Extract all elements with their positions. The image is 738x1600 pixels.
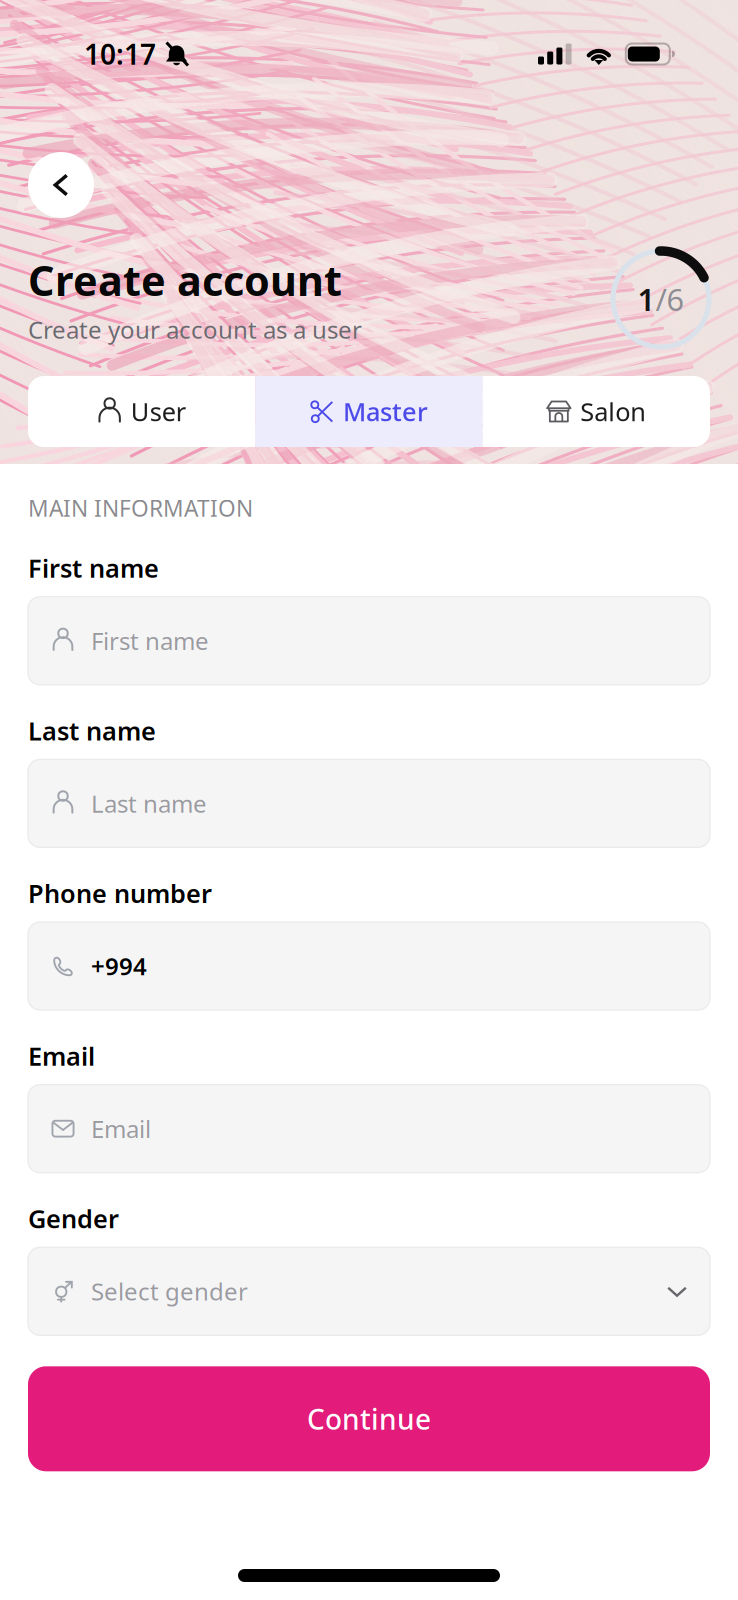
staticText: User	[131, 395, 186, 428]
staticText: Master	[343, 395, 428, 428]
staticText: MAIN INFORMATION	[28, 493, 253, 523]
staticText: First name	[91, 625, 209, 657]
staticText: Gender	[28, 1202, 119, 1235]
staticText: /6	[655, 279, 684, 319]
button[interactable]: Back	[28, 152, 94, 218]
staticText: Email	[28, 1039, 95, 1073]
staticText: +994	[91, 950, 147, 982]
button[interactable]: +994	[28, 922, 710, 1010]
staticText: Phone number	[28, 876, 212, 910]
staticText: Continue	[307, 1400, 431, 1437]
button[interactable]: First name	[28, 597, 710, 685]
staticText: 1	[637, 279, 655, 319]
button[interactable]: Salon	[483, 376, 710, 447]
button[interactable]: Email	[28, 1085, 710, 1173]
staticText: Create your account as a user	[28, 313, 362, 345]
staticText: Create account	[28, 253, 342, 307]
staticText: Last name	[28, 714, 156, 747]
button[interactable]: User	[28, 376, 255, 447]
staticText: Email	[91, 1113, 151, 1145]
staticText: Salon	[580, 395, 646, 428]
button[interactable]: Master	[255, 376, 483, 447]
staticText: Select gender	[91, 1275, 248, 1307]
staticText: 10:17	[84, 35, 156, 73]
button[interactable]: Select gender	[28, 1247, 710, 1335]
staticText: Last name	[91, 787, 207, 819]
button[interactable]: Last name	[28, 759, 710, 847]
staticText: First name	[28, 551, 159, 585]
button[interactable]: Continue	[28, 1366, 710, 1471]
